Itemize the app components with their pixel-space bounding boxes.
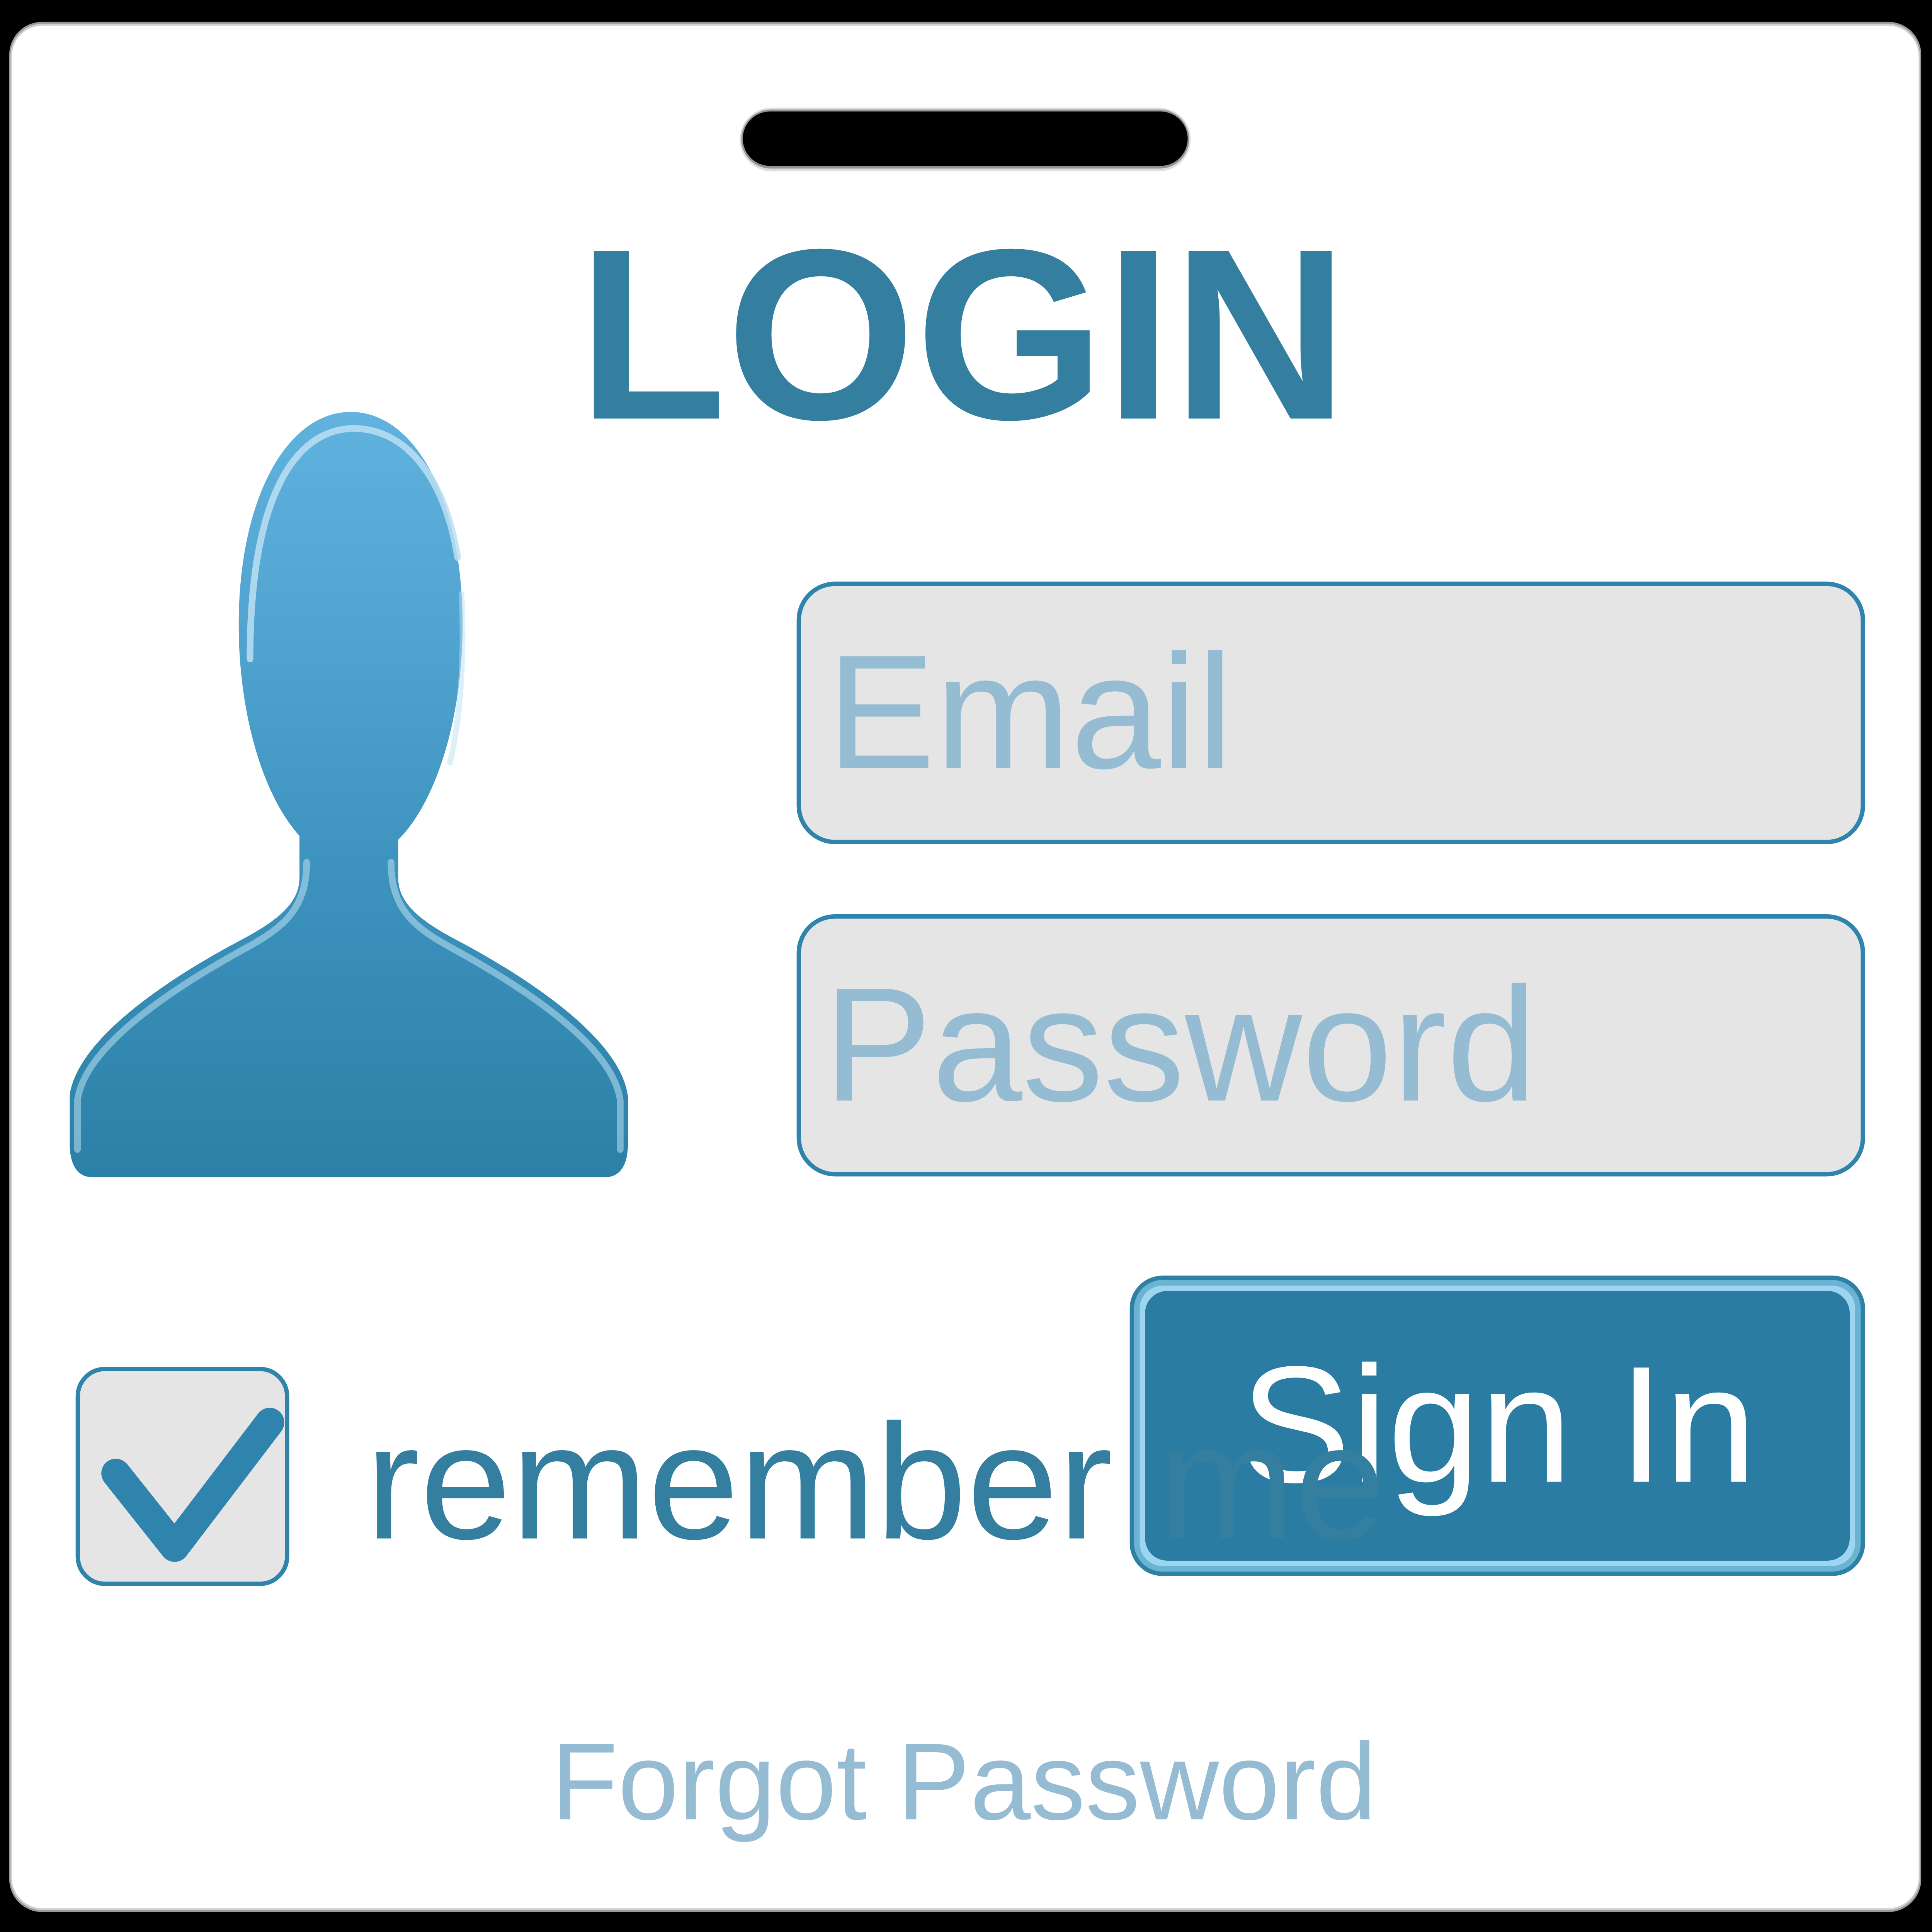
button[interactable]: Sign In xyxy=(1130,1276,1865,1576)
button[interactable]: Forgot Password xyxy=(694,1717,1235,1843)
button[interactable]: remember me xyxy=(76,1360,1044,1586)
button[interactable]: Email xyxy=(797,582,1865,844)
button[interactable]: Password xyxy=(797,914,1865,1176)
